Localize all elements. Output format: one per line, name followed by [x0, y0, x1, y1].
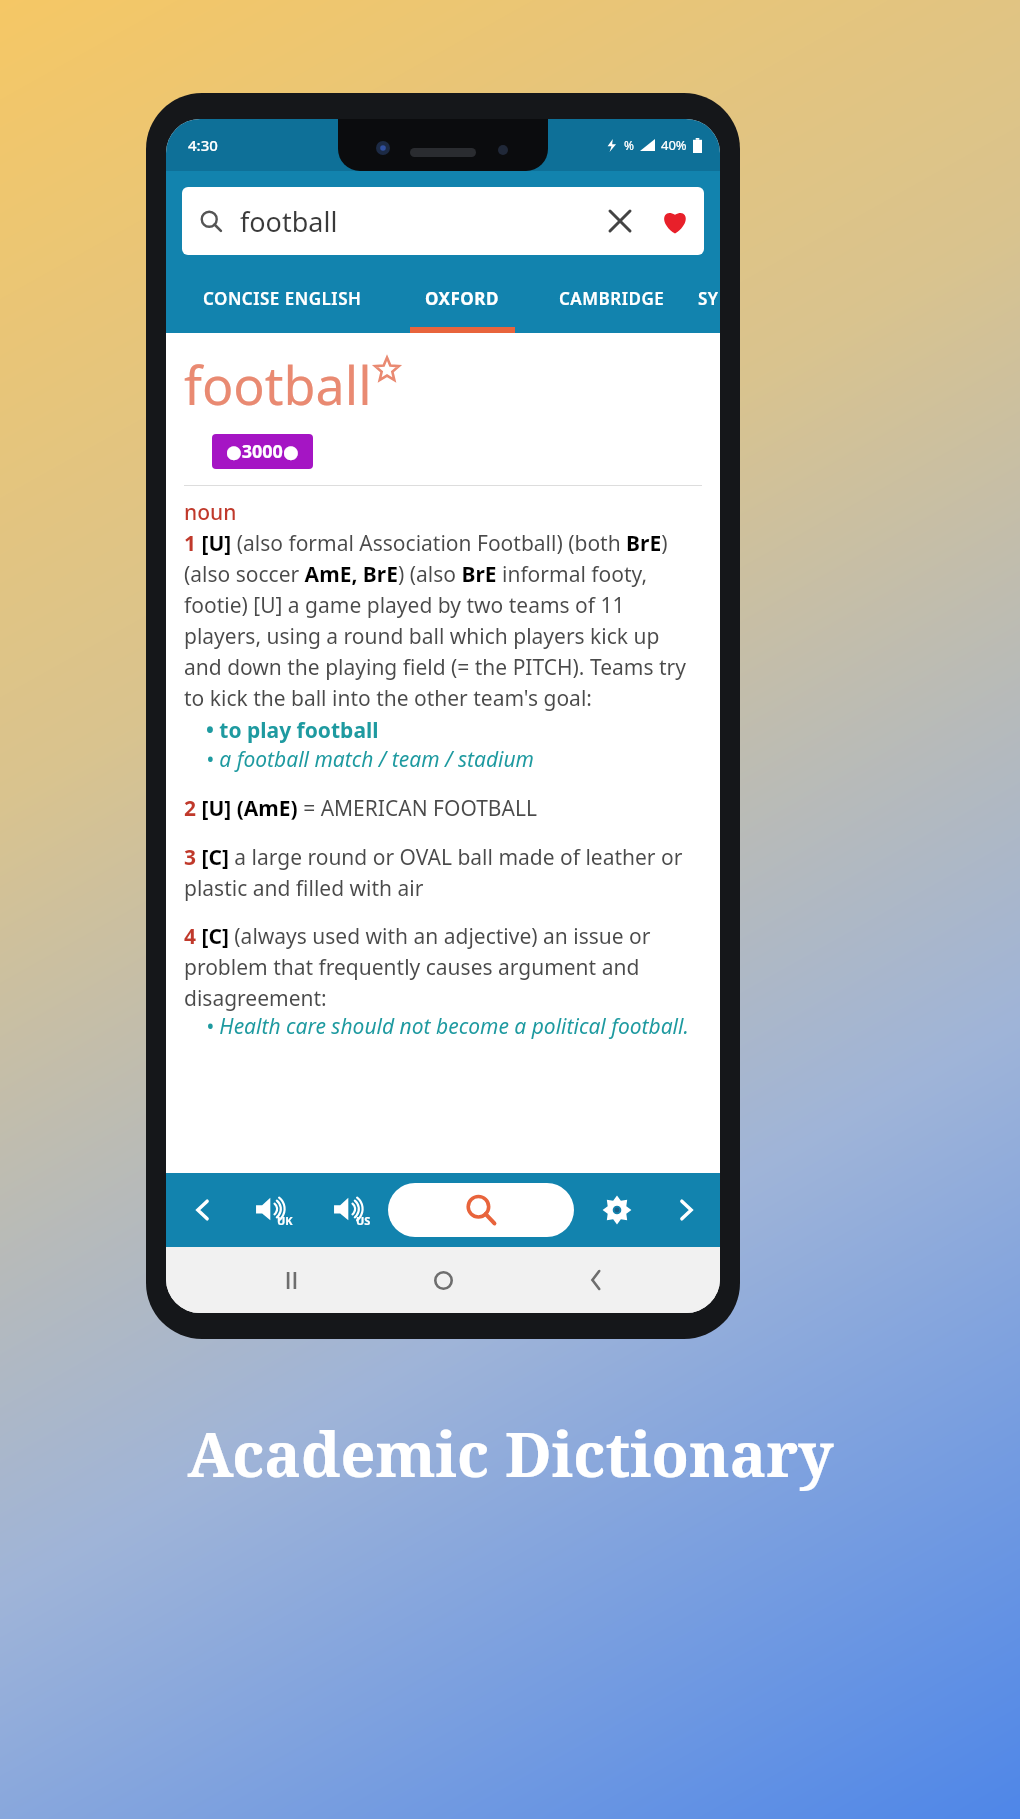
button[interactable]: Clear: [598, 199, 642, 243]
button[interactable]: Bookmark: [374, 357, 400, 383]
staticText: football: [184, 349, 372, 420]
button[interactable]: Home: [415, 1252, 471, 1308]
button[interactable]: Search: [388, 1183, 574, 1237]
staticText: ●3000●: [226, 439, 299, 464]
staticText: %: [624, 137, 634, 153]
button[interactable]: CONCISE ENGLISH: [166, 271, 398, 333]
button[interactable]: Back: [568, 1252, 624, 1308]
staticText: OXFORD: [425, 287, 499, 310]
button[interactable]: CAMBRIDGE: [526, 271, 698, 333]
other: Search: [200, 210, 222, 232]
button[interactable]: Settings: [574, 1173, 660, 1247]
button[interactable]: Search: [182, 187, 704, 255]
staticText: • to play football: [206, 716, 379, 745]
staticText: CAMBRIDGE: [559, 287, 665, 310]
staticText: 2 [U] (AmE) = AMERICAN FOOTBALL: [184, 794, 537, 823]
button[interactable]: OXFORD: [398, 271, 526, 333]
button[interactable]: SYNO: [698, 271, 720, 333]
button[interactable]: Favorite: [652, 198, 698, 244]
staticText: Academic Dictionary: [187, 1412, 834, 1495]
button[interactable]: Recents: [263, 1252, 319, 1308]
staticText: CONCISE ENGLISH: [203, 287, 362, 310]
button[interactable]: Pronounce US: [310, 1173, 388, 1247]
staticText: • a football match / team / stadium: [206, 745, 534, 774]
button[interactable]: Next: [660, 1173, 712, 1247]
staticText: 40%: [661, 136, 687, 154]
staticText: 4:30: [188, 135, 218, 155]
button[interactable]: Pronounce UK: [232, 1173, 310, 1247]
staticText: football: [240, 203, 598, 240]
staticText: 4 [C] (always used with an adjective) an…: [184, 922, 702, 1012]
button[interactable]: Previous: [174, 1173, 232, 1247]
staticText: • Health care should not become a politi…: [206, 1012, 689, 1041]
staticText: noun: [184, 498, 237, 527]
staticText: US: [356, 1213, 371, 1228]
staticText: UK: [277, 1213, 293, 1228]
staticText: 1 [U] (also formal Association Football)…: [184, 529, 702, 712]
staticText: 3 [C] a large round or OVAL ball made of…: [184, 843, 702, 902]
staticText: SYNO: [698, 287, 720, 310]
